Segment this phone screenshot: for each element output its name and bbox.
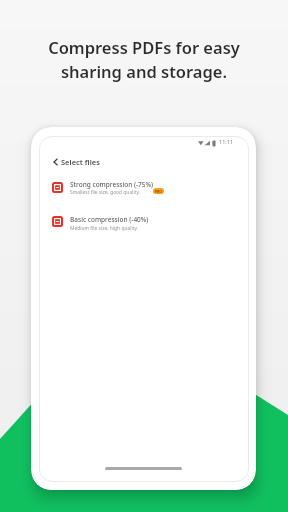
staticText: PRO bbox=[155, 189, 163, 194]
staticText: Medium file size, high quality. bbox=[70, 225, 139, 232]
button[interactable]: Select files bbox=[51, 157, 100, 167]
staticText: 11:11 bbox=[219, 138, 234, 145]
button[interactable]: Strong compression (-75%) bbox=[52, 180, 166, 197]
staticText: Smallest file size, good quality. bbox=[70, 189, 141, 196]
staticText: Strong compression (-75%) bbox=[70, 180, 154, 189]
staticText: Basic compression (-40%) bbox=[70, 215, 149, 224]
staticText: Select files bbox=[61, 157, 100, 167]
button[interactable]: Basic compression (-40%) bbox=[52, 215, 166, 233]
staticText: Compress PDFs for easy sharing and stora… bbox=[0, 36, 288, 83]
